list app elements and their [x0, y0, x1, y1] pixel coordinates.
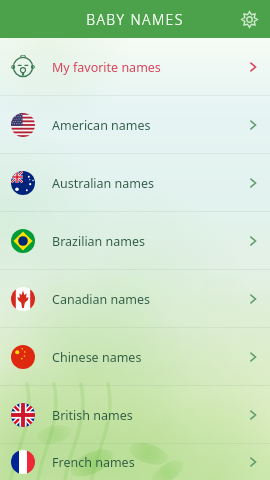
button[interactable]: Australian names	[0, 154, 270, 212]
staticText: American names	[52, 117, 151, 134]
button[interactable]: Canadian names	[0, 270, 270, 328]
staticText: BABY NAMES	[86, 10, 184, 29]
staticText: Canadian names	[52, 291, 151, 308]
staticText: Australian names	[52, 175, 155, 192]
button[interactable]: British names	[0, 386, 270, 444]
button[interactable]: Settings	[236, 6, 262, 32]
button[interactable]: Brazilian names	[0, 212, 270, 270]
staticText: Chinese names	[52, 349, 142, 366]
staticText: Brazilian names	[52, 233, 146, 250]
button[interactable]: My favorite names	[0, 38, 270, 96]
button[interactable]: French names	[0, 444, 270, 480]
staticText: French names	[52, 454, 135, 471]
staticText: British names	[52, 407, 133, 424]
staticText: My favorite names	[52, 59, 161, 76]
button[interactable]: American names	[0, 96, 270, 154]
button[interactable]: Chinese names	[0, 328, 270, 386]
